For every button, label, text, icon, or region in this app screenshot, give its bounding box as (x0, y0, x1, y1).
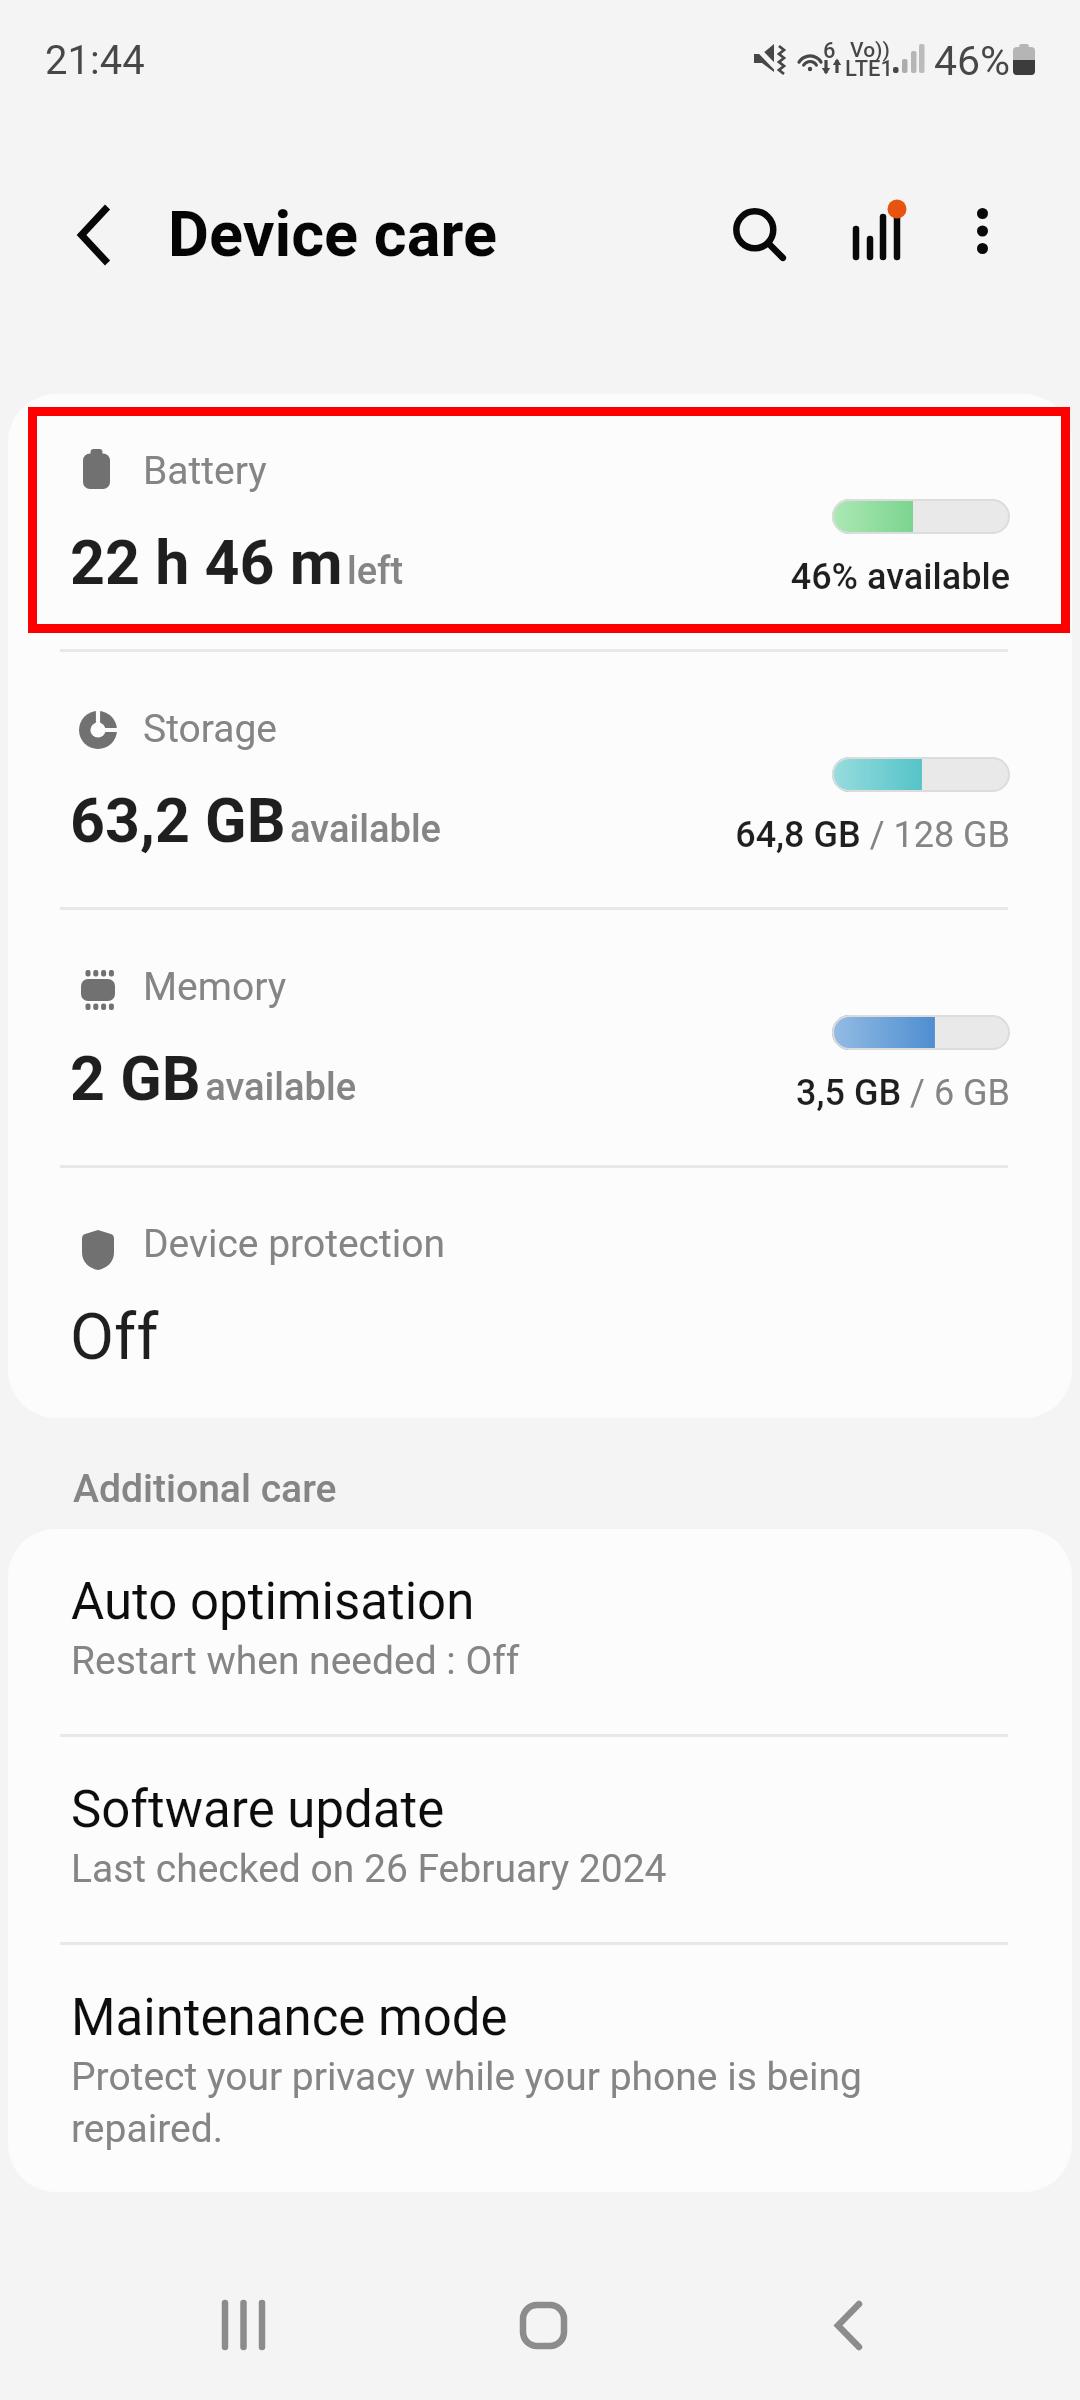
staticText: Battery (143, 448, 267, 494)
staticText: 22 h 46 m left (70, 527, 404, 598)
staticText: Auto optimisation (71, 1572, 475, 1632)
staticText: Off (70, 1300, 159, 1375)
staticText: 2 GB available (70, 1043, 357, 1114)
button[interactable]: Auto optimisation (8, 1529, 1072, 1734)
staticText: Memory (143, 964, 287, 1010)
button[interactable]: Storage (8, 652, 1072, 907)
button[interactable]: Device protection (8, 1168, 1072, 1418)
staticText: Storage (143, 706, 278, 752)
button[interactable]: Recent apps (185, 2265, 305, 2385)
staticText: Last checked on 26 February 2024 (71, 1846, 667, 1892)
staticText: Device protection (143, 1221, 446, 1267)
staticText: Restart when needed : Off (71, 1638, 520, 1684)
button[interactable]: Maintenance mode (8, 1945, 1072, 2192)
staticText: Software update (71, 1780, 445, 1840)
button[interactable]: Battery (8, 394, 1072, 649)
button[interactable]: More options (938, 187, 1026, 275)
button[interactable]: Search (708, 183, 812, 287)
button[interactable]: Diagnostics (825, 178, 929, 282)
button[interactable]: Software update (8, 1737, 1072, 1942)
button[interactable]: Navigate up (54, 195, 134, 275)
staticText: 46% available (790, 556, 1010, 598)
staticText: 64,8 GB / 128 GB (735, 814, 1010, 856)
staticText: Device care (168, 198, 497, 272)
staticText: 46% (934, 37, 1011, 85)
staticText: 3,5 GB / 6 GB (796, 1072, 1010, 1114)
staticText: Protect your privacy while your phone is… (71, 2054, 882, 2152)
staticText: 63,2 GB available (70, 785, 441, 856)
staticText: 21:44 (45, 37, 145, 84)
staticText: Additional care (73, 1466, 337, 1512)
staticText: 6 (823, 38, 836, 64)
button[interactable]: Home (483, 2265, 603, 2385)
staticText: Vo)) (850, 38, 890, 63)
staticText: Maintenance mode (71, 1988, 508, 2048)
button[interactable]: Back (788, 2265, 908, 2385)
staticText: LTE1 (845, 56, 894, 82)
button[interactable]: Memory (8, 910, 1072, 1165)
